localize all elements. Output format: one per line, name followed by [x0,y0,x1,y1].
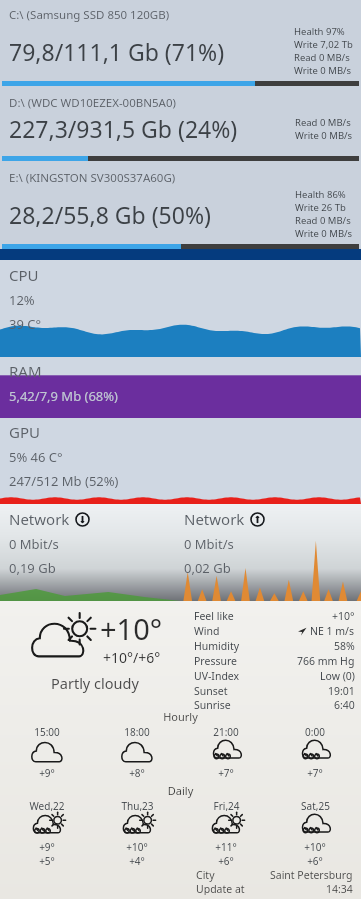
staticText: +10° [304,840,326,854]
staticText: +11° [215,840,237,854]
staticText: +9° [39,840,55,854]
staticText: 18:00 [124,725,150,739]
staticText: Feel like [194,609,234,623]
staticText: 79,8/111,1 Gb (71%) [9,36,225,67]
staticText: Wind [194,624,220,638]
staticText: +9° [39,766,55,780]
button[interactable]: Humidity [194,638,355,653]
staticText: 0,02 Gb [184,559,231,577]
button[interactable]: Sunrise [194,698,355,709]
staticText: Write 0 MB/s [295,227,353,240]
staticText: 0 Mbit/s [184,535,234,553]
staticText: Fri,24 [213,799,240,813]
staticText: Read 0 MB/s [295,214,351,227]
staticText: E:\ (KINGSTON SV300S37A60G) [9,170,176,186]
staticText: +7° [218,766,234,780]
button[interactable]: RAM [0,357,361,418]
staticText: Update at [196,882,245,895]
button[interactable]: 18:00 [93,725,181,780]
staticText: City [196,868,215,882]
staticText: +10° [100,609,163,648]
staticText: 12% [9,291,35,309]
staticText: Wed,22 [29,799,65,813]
button[interactable]: D:\ (WDC WD10EZEX-00BN5A0) [0,86,361,161]
staticText: 0 Mbit/s [9,535,59,553]
button[interactable]: Sat,25 [271,799,359,868]
staticText: Write 0 MB/s [295,129,353,142]
staticText: Read 0 MB/s [294,51,350,64]
other: Download [75,512,90,527]
staticText: D:\ (WDC WD10EZEX-00BN5A0) [9,95,176,111]
staticText: Humidity [194,639,240,653]
staticText: 5,42/7,9 Mb (68%) [9,387,119,405]
button[interactable]: Fri,24 [182,799,270,868]
staticText: NE 1 m/s [310,624,355,638]
staticText: Daily [0,783,361,798]
staticText: Network [184,509,245,529]
staticText: Sunset [194,684,228,698]
staticText: 766 mm Hg [297,654,355,668]
button[interactable]: Update at [196,882,353,895]
staticText: 21:00 [213,725,239,739]
staticText: 5% 46 C° [9,448,63,466]
button[interactable]: Network [9,509,180,577]
staticText: +6° [218,854,234,868]
button[interactable]: Thu,23 [93,799,181,868]
staticText: GPU [9,422,40,442]
staticText: 247/512 Mb (52%) [9,472,119,490]
staticText: CPU [9,265,39,285]
staticText: 19:01 [328,684,355,698]
staticText: Sat,25 [301,799,330,813]
button[interactable]: Sunset [194,683,355,698]
staticText: Partly cloudy [51,673,139,693]
staticText: Write 26 Tb [295,201,346,214]
staticText: +5° [39,854,55,868]
staticText: +6° [307,854,323,868]
staticText: Network [9,509,70,529]
staticText: C:\ (Samsung SSD 850 120GB) [9,7,170,23]
staticText: RAM [9,361,42,381]
staticText: UV-Index [194,669,240,683]
button[interactable]: Pressure [194,653,355,668]
button[interactable]: Network [184,509,361,577]
staticText: 0,19 Gb [9,559,56,577]
staticText: 58% [334,639,355,653]
staticText: Saint Petersburg [270,868,353,882]
button[interactable]: 21:00 [182,725,270,780]
staticText: Write 0 MB/s [294,64,352,77]
button[interactable]: 0:00 [271,725,359,780]
staticText: +7° [307,766,323,780]
staticText: Read 0 MB/s [295,116,351,129]
button[interactable]: City [196,868,353,882]
staticText: +10° [126,840,148,854]
button[interactable]: Wed,22 [3,799,91,868]
staticText: Sunrise [194,698,231,709]
staticText: 28,2/55,8 Gb (50%) [9,199,211,230]
staticText: 227,3/931,5 Gb (24%) [9,113,238,144]
button[interactable]: C:\ (Samsung SSD 850 120GB) [0,0,361,86]
button[interactable]: Wind [194,623,355,638]
staticText: 0:00 [305,725,325,739]
staticText: Write 7,02 Tb [294,38,353,51]
button[interactable]: GPU [0,418,361,504]
staticText: Hourly [0,709,361,724]
staticText: Health 86% [295,188,346,201]
staticText: 6:40 [334,698,355,709]
staticText: Low (0) [320,669,355,683]
staticText: +4° [129,854,145,868]
button[interactable]: 15:00 [3,725,91,780]
button[interactable]: UV-Index [194,668,355,683]
staticText: +8° [129,766,145,780]
button[interactable]: E:\ (KINGSTON SV300S37A60G) [0,161,361,249]
button[interactable]: CPU [0,260,361,357]
other: Upload [250,512,265,527]
staticText: Pressure [194,654,237,668]
staticText: +10°/+6° [103,648,161,667]
staticText: 39 C° [9,315,42,333]
staticText: Thu,23 [121,799,154,813]
staticText: 15:00 [34,725,60,739]
button[interactable]: +10° [0,601,190,693]
staticText: Health 97% [294,25,345,38]
button[interactable]: Feel like [194,608,355,623]
staticText: 14:34 [326,882,353,895]
